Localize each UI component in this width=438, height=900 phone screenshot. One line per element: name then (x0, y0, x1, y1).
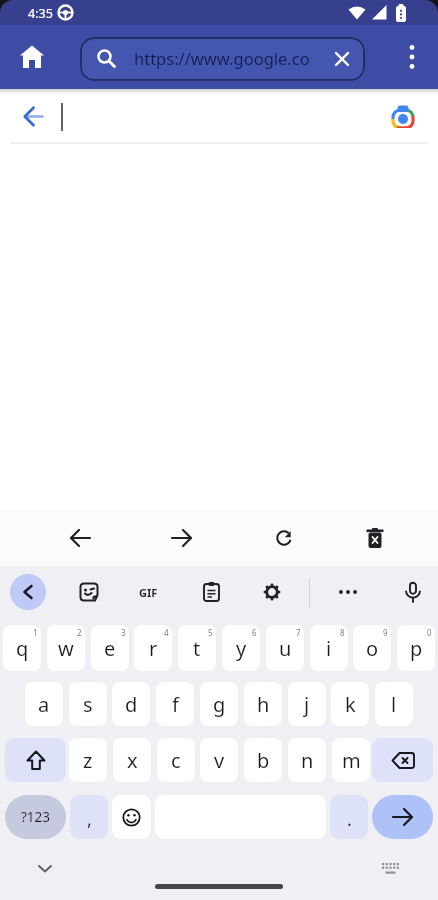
staticText: q (16, 635, 29, 662)
button[interactable] (319, 37, 365, 81)
button[interactable]: h (244, 682, 282, 726)
staticText: r (149, 635, 158, 662)
button[interactable]: c (157, 738, 195, 782)
staticText: w (58, 635, 74, 662)
staticText: h (257, 691, 270, 718)
button[interactable] (372, 738, 433, 782)
button[interactable] (12, 94, 54, 138)
button[interactable]: j (288, 682, 326, 726)
staticText: t (193, 635, 201, 662)
button[interactable]: b (244, 738, 282, 782)
button[interactable] (10, 574, 46, 610)
staticText: 0 (427, 627, 432, 638)
button[interactable] (326, 570, 370, 614)
button[interactable]: p (397, 625, 435, 671)
staticText: . (347, 807, 352, 832)
staticText: 7 (296, 627, 301, 638)
button[interactable]: l (375, 682, 413, 726)
staticText: k (345, 691, 356, 718)
staticText: 9 (383, 627, 388, 638)
button[interactable] (67, 570, 111, 614)
staticText: j (304, 691, 310, 718)
button[interactable] (189, 570, 233, 614)
button[interactable]: m (332, 738, 370, 782)
staticText: n (301, 747, 314, 774)
staticText: 6 (252, 627, 257, 638)
button[interactable] (353, 516, 397, 560)
staticText: z (83, 747, 93, 774)
button[interactable]: o (353, 625, 391, 671)
staticText: m (342, 747, 361, 774)
staticText: d (125, 691, 138, 718)
staticText: l (391, 691, 397, 718)
staticText: u (279, 635, 292, 662)
staticText: , (87, 807, 92, 832)
button[interactable]: v (200, 738, 238, 782)
button[interactable] (10, 35, 54, 79)
button[interactable]: d (112, 682, 150, 726)
button[interactable]: g (200, 682, 238, 726)
staticText: y (236, 635, 247, 662)
button[interactable] (262, 516, 306, 560)
staticText: b (257, 747, 270, 774)
staticText: g (213, 691, 226, 718)
staticText: 4:35 (28, 5, 53, 22)
button[interactable] (392, 35, 432, 79)
button[interactable]: n (288, 738, 326, 782)
button[interactable] (391, 570, 435, 614)
button[interactable] (368, 851, 412, 887)
staticText: v (214, 747, 225, 774)
button[interactable]: y (222, 625, 260, 671)
button[interactable]: t (178, 625, 216, 671)
staticText: 8 (340, 627, 345, 638)
button[interactable]: k (331, 682, 369, 726)
staticText: f (172, 691, 179, 718)
button[interactable]: x (113, 738, 151, 782)
button[interactable] (155, 884, 283, 889)
button[interactable]: e (91, 625, 129, 671)
staticText: x (127, 747, 138, 774)
button[interactable] (58, 516, 102, 560)
staticText: a (38, 691, 50, 718)
button[interactable]: i (310, 625, 348, 671)
staticText: 3 (121, 627, 126, 638)
button[interactable] (23, 851, 67, 887)
button[interactable]: w (47, 625, 85, 671)
button[interactable]: z (69, 738, 107, 782)
staticText: https://www.google.co (134, 47, 310, 69)
staticText: 5 (208, 627, 213, 638)
staticText: e (104, 635, 116, 662)
staticText: 1 (33, 627, 38, 638)
button[interactable] (388, 101, 418, 131)
button[interactable] (112, 795, 151, 839)
button[interactable]: ?123 (5, 795, 66, 839)
staticText: o (366, 635, 379, 662)
staticText: 2 (77, 627, 82, 638)
button[interactable]: . (330, 795, 368, 839)
button[interactable]: s (69, 682, 107, 726)
button[interactable] (250, 570, 294, 614)
button[interactable] (5, 738, 66, 782)
button[interactable] (160, 516, 204, 560)
button[interactable]: , (70, 795, 108, 839)
button[interactable]: GIF (126, 570, 170, 614)
staticText: ?123 (21, 808, 51, 826)
button[interactable]: a (25, 682, 63, 726)
button[interactable]: r (134, 625, 172, 671)
staticText: s (83, 691, 93, 718)
staticText: p (410, 635, 423, 662)
staticText: i (326, 635, 332, 662)
button[interactable]: q (3, 625, 41, 671)
button[interactable] (372, 795, 433, 839)
staticText: c (171, 747, 181, 774)
button[interactable]: https://www.google.co (80, 37, 365, 81)
button[interactable]: f (156, 682, 194, 726)
button[interactable]: u (266, 625, 304, 671)
staticText: 4 (164, 627, 169, 638)
staticText: GIF (139, 585, 158, 600)
